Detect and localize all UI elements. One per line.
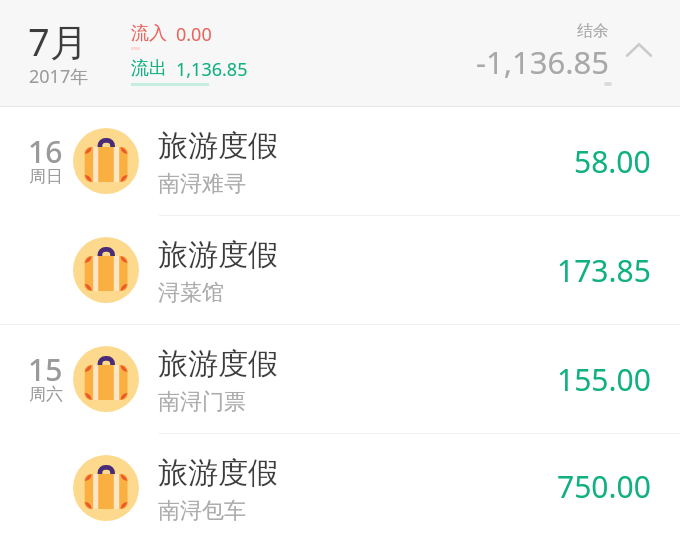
staticText: 1,136.85 [176, 57, 248, 82]
staticText: 旅游度假 [158, 236, 278, 274]
staticText: 0.00 [176, 22, 212, 47]
staticText: 浔菜馆 [158, 279, 224, 307]
staticText: 58.00 [574, 141, 651, 182]
staticText: 南浔门票 [158, 388, 246, 416]
staticText: 流入 [131, 22, 167, 45]
button[interactable]: 16 [0, 107, 680, 215]
staticText: 155.00 [557, 359, 651, 400]
staticText: 南浔包车 [158, 497, 246, 525]
staticText: 2017年 [29, 64, 89, 89]
staticText: 周六 [29, 384, 63, 405]
staticText: 173.85 [557, 250, 651, 291]
staticText: 流出 [131, 57, 167, 80]
staticText: 结余 [577, 21, 609, 41]
button[interactable]: 15 [0, 325, 680, 433]
staticText: 7月 [28, 15, 88, 67]
staticText: 南浔难寻 [158, 170, 246, 198]
staticText: 旅游度假 [158, 127, 278, 165]
staticText: 15 [28, 349, 63, 390]
staticText: 旅游度假 [158, 345, 278, 383]
staticText: 750.00 [557, 466, 651, 507]
staticText: -1,136.85 [476, 41, 609, 83]
staticText: 旅游度假 [158, 454, 278, 492]
button[interactable]: 旅游度假 [0, 216, 680, 324]
staticText: 周日 [29, 166, 63, 187]
staticText: 16 [28, 131, 63, 172]
button[interactable]: Collapse monthly summary [617, 28, 661, 72]
button[interactable]: 旅游度假 [0, 434, 680, 539]
